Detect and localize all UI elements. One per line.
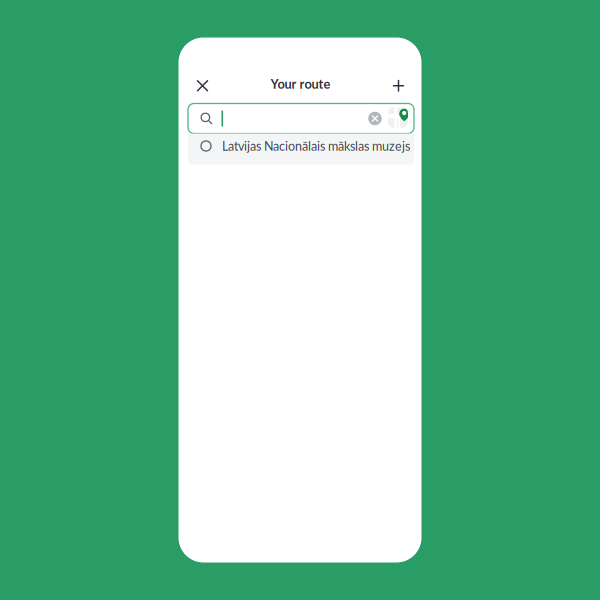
button[interactable]: Pick on map [385, 104, 411, 132]
button[interactable]: Clear text [365, 104, 385, 132]
staticText: Your route [270, 76, 330, 91]
staticText: Latvijas Nacionālais mākslas muzejs [222, 138, 410, 153]
button[interactable]: Latvijas Nacionālais mākslas muzejs [187, 133, 413, 164]
button[interactable]: Add stop [380, 68, 416, 104]
button[interactable]: Close [184, 68, 220, 104]
